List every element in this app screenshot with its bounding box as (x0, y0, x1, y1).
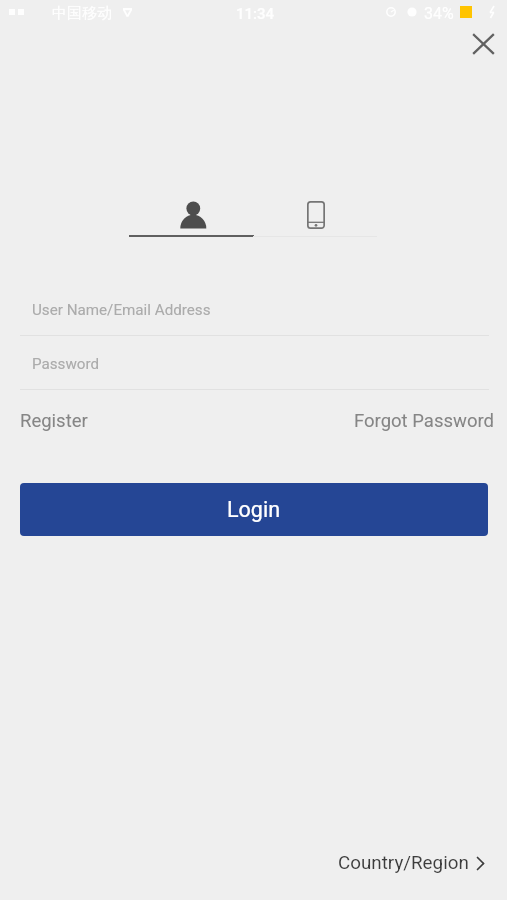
staticText: User Name/Email Address (32, 301, 211, 319)
button[interactable]: Phone login (253, 192, 377, 237)
button[interactable]: Register (20, 404, 88, 438)
button[interactable]: Account login (129, 192, 254, 237)
staticText: 34% (424, 4, 454, 23)
staticText: 11:34 (236, 5, 275, 23)
staticText: Forgot Password (354, 410, 494, 432)
button[interactable]: Forgot Password (354, 404, 494, 438)
staticText: Login (227, 497, 281, 522)
staticText: 中国移动 (52, 4, 112, 23)
button[interactable]: User Name/Email Address (20, 288, 488, 331)
button[interactable]: Country/Region (338, 848, 485, 878)
staticText: Country/Region (338, 852, 469, 874)
staticText: Password (32, 355, 100, 373)
button[interactable]: Password (20, 342, 488, 385)
button[interactable]: Login (20, 483, 488, 536)
staticText: Register (20, 410, 88, 432)
button[interactable]: Close (460, 21, 506, 67)
